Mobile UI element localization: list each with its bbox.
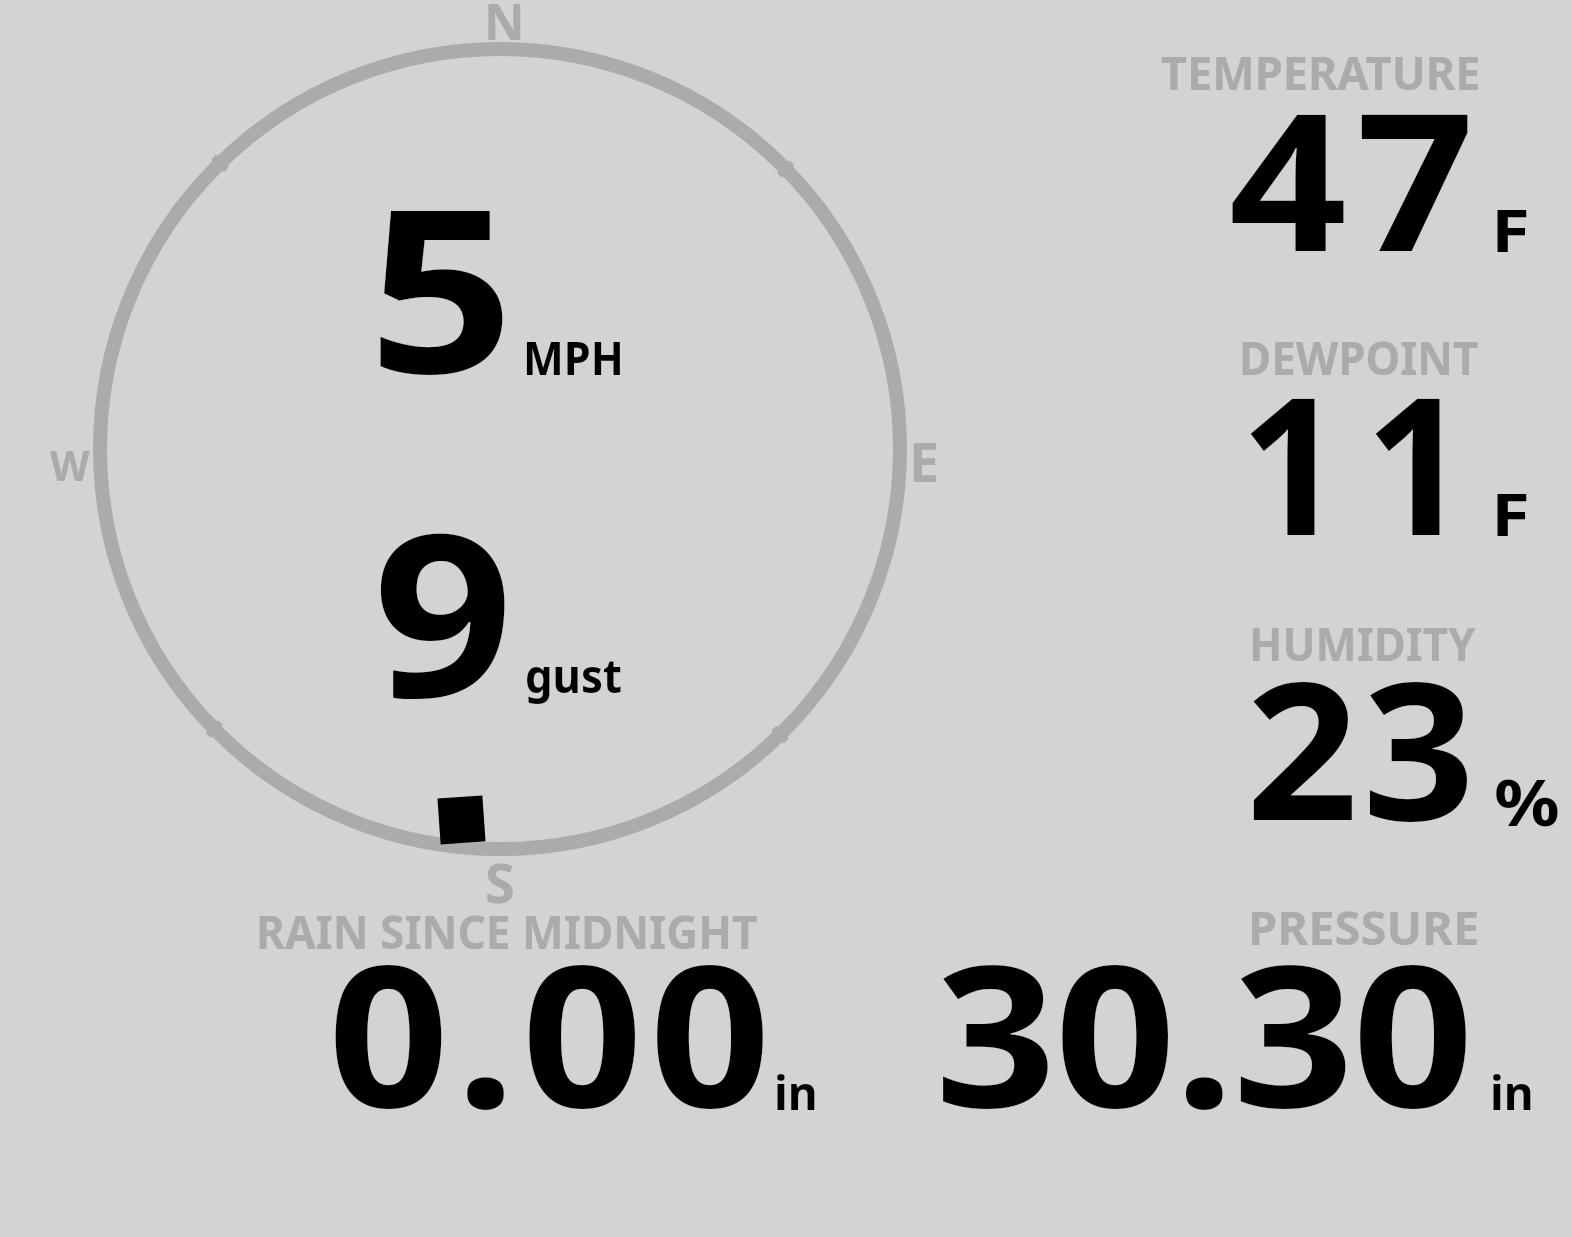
staticText: 47 xyxy=(1229,47,1484,307)
button[interactable]: Wind compass, 5 miles per hour, gusting … xyxy=(90,0,920,910)
staticText: in xyxy=(774,1061,818,1124)
button[interactable]: Humidity 23 percent xyxy=(1150,600,1571,870)
staticText: HUMIDITY xyxy=(1249,612,1476,675)
button[interactable]: Dewpoint 11 degrees Fahrenheit xyxy=(1150,315,1571,585)
staticText: N xyxy=(484,0,525,55)
staticText: 23 xyxy=(1246,616,1479,876)
staticText: E xyxy=(909,424,940,498)
staticText: DEWPOINT xyxy=(1239,326,1479,389)
staticText: 5 xyxy=(368,131,515,439)
staticText: TEMPERATURE xyxy=(1161,41,1481,104)
staticText: gust xyxy=(525,643,623,707)
staticText: % xyxy=(1494,758,1560,845)
staticText: in xyxy=(1490,1061,1534,1124)
button[interactable]: Temperature 47 degrees Fahrenheit xyxy=(1150,30,1571,300)
staticText: 9 xyxy=(373,455,514,763)
staticText: W xyxy=(50,437,90,493)
button[interactable]: Rain since midnight 0.00 inches xyxy=(240,890,840,1130)
staticText: 0.00 xyxy=(328,897,777,1164)
staticText: PRESSURE xyxy=(1248,896,1479,959)
staticText: 30.30 xyxy=(935,897,1473,1164)
staticText: F xyxy=(1491,189,1531,269)
button[interactable]: Pressure 30.30 inches xyxy=(920,890,1540,1130)
staticText: 11 xyxy=(1240,331,1490,591)
staticText: F xyxy=(1491,473,1531,553)
staticText: MPH xyxy=(523,326,624,389)
staticText: RAIN SINCE MIDNIGHT xyxy=(256,900,758,963)
staticText: S xyxy=(485,845,515,919)
